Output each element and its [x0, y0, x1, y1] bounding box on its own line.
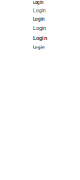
staticText: Login: [33, 16, 45, 22]
staticText: Login: [33, 8, 46, 13]
staticText: Login: [33, 25, 46, 31]
staticText: Login: [33, 0, 43, 5]
staticText: Login: [33, 34, 47, 41]
staticText: Login: [33, 44, 45, 50]
